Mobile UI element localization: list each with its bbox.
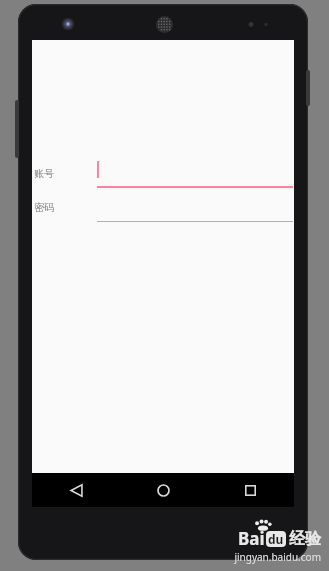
staticText: 经验: [289, 529, 321, 549]
button[interactable]: Back: [32, 473, 120, 507]
staticText: jingyan.baidu.com: [234, 550, 321, 564]
button[interactable]: 密码: [32, 192, 294, 222]
button[interactable]: Home: [120, 473, 207, 507]
staticText: Bai: [238, 527, 265, 550]
button[interactable]: 账号: [32, 158, 294, 188]
staticText: 账号: [34, 167, 97, 180]
staticText: 密码: [34, 201, 97, 214]
staticText: du: [268, 531, 284, 547]
button[interactable]: Recent apps: [207, 473, 294, 507]
